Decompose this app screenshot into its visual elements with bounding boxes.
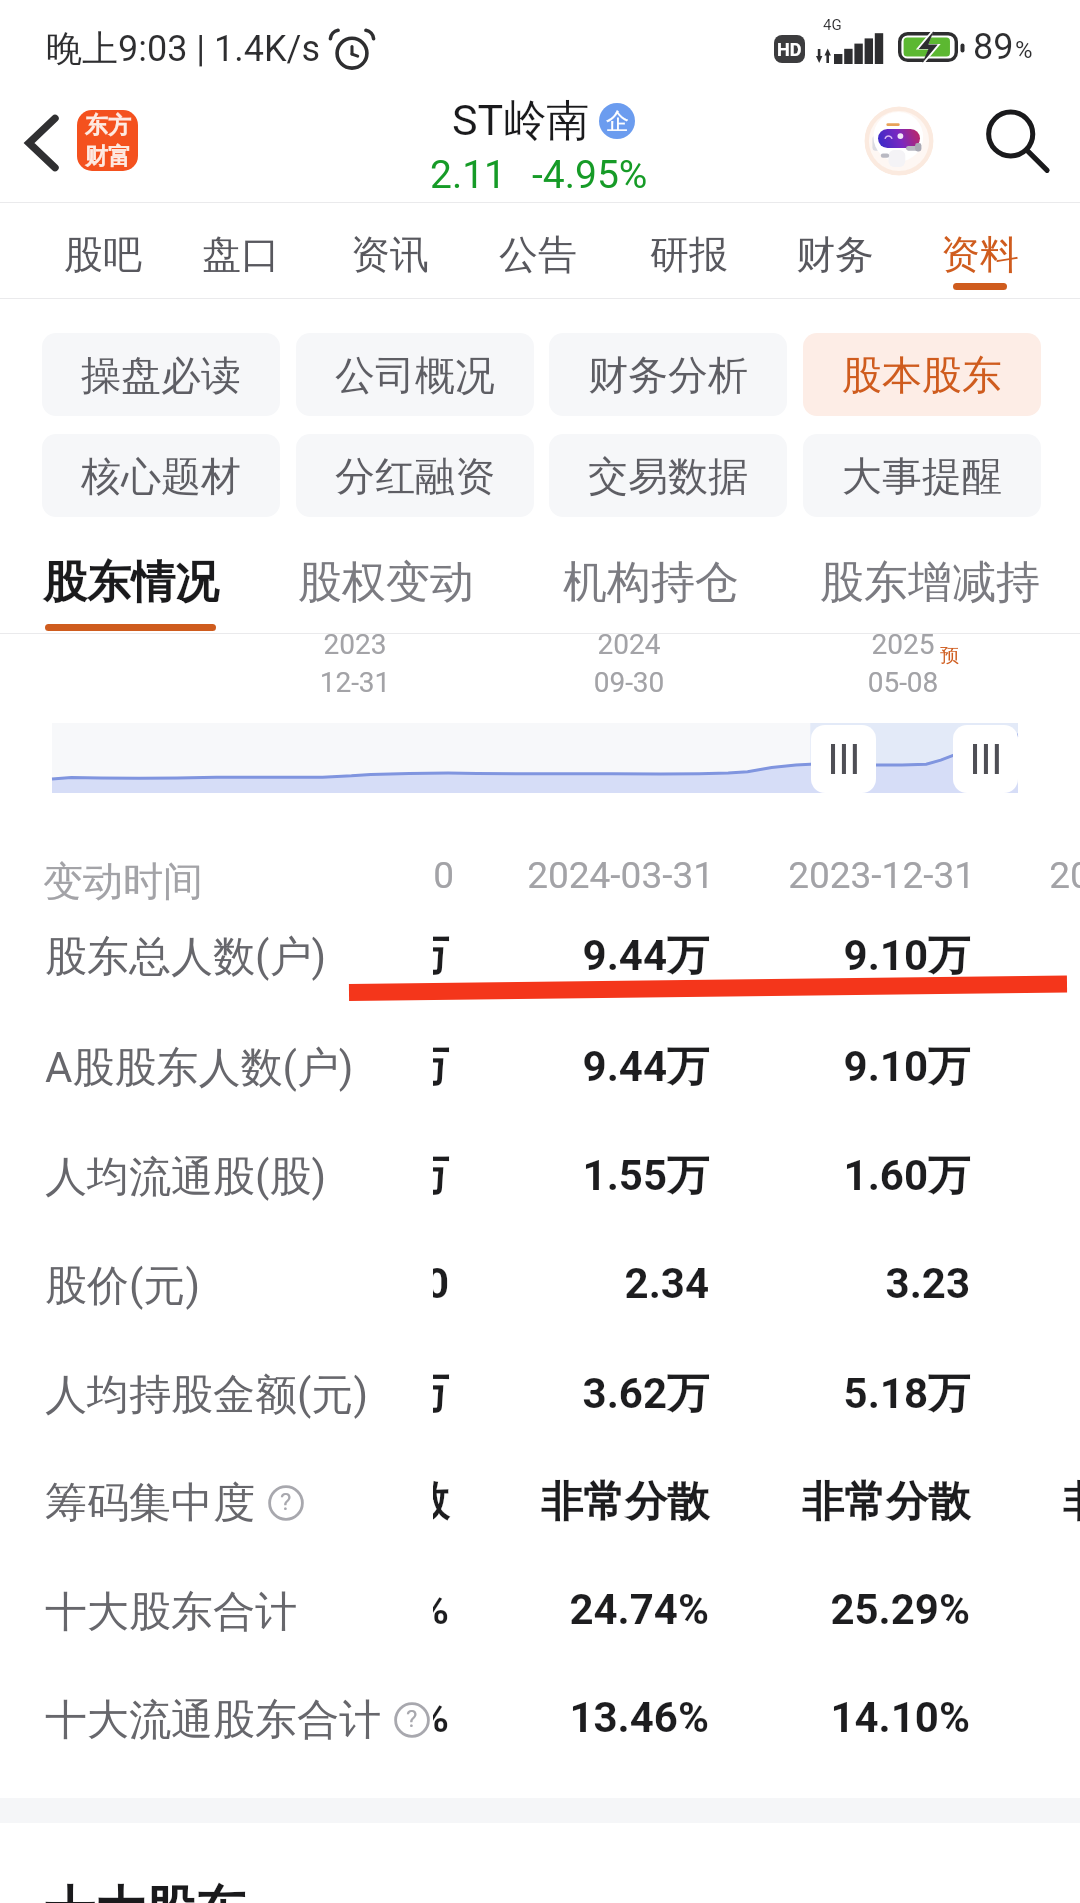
staticText: 25.29%: [740, 1585, 970, 1634]
staticText: 09-30: [549, 666, 709, 699]
button[interactable]: 分红融资: [296, 434, 534, 517]
button[interactable]: 东方财富: [77, 110, 138, 171]
staticText: 4G: [823, 16, 842, 34]
button[interactable]: 交易数据: [549, 434, 787, 517]
staticText: 人均持股金额(元): [45, 1369, 368, 1422]
staticText: 股东总人数(户): [45, 931, 326, 984]
button[interactable]: 筹码集中度: [45, 1476, 304, 1530]
staticText: 交易数据: [588, 451, 748, 501]
staticText: 人均流通股(股): [45, 1151, 326, 1204]
staticText: 股价(元): [45, 1260, 200, 1313]
button[interactable]: Range handle: [811, 725, 876, 793]
button[interactable]: 财务分析: [549, 333, 787, 416]
button[interactable]: 人均流通股(股): [45, 1150, 326, 1204]
staticText: 1.60万: [740, 1150, 970, 1203]
button[interactable]: 股东情况: [33, 533, 209, 623]
button[interactable]: 公告: [465, 203, 611, 298]
staticText: -4.95%: [532, 152, 648, 198]
staticText: 变动时间: [43, 856, 203, 906]
staticText: 9.44万: [479, 1041, 709, 1094]
staticText: 9.50万: [433, 1041, 449, 1094]
button[interactable]: A股股东人数(户): [45, 1041, 354, 1095]
staticText: 资讯: [351, 230, 429, 279]
button[interactable]: 十大股东合计: [45, 1585, 297, 1639]
button[interactable]: 资讯: [317, 203, 463, 298]
staticText: 3.62万: [479, 1368, 709, 1421]
staticText: 分红融资: [335, 451, 495, 501]
staticText: 2024: [549, 628, 709, 661]
button[interactable]: Range handle: [953, 725, 1018, 793]
staticText: 非常分散: [479, 1476, 709, 1529]
button[interactable]: 股权变动: [288, 533, 464, 623]
staticText: 2023: [275, 628, 435, 661]
staticText: 13.46%: [479, 1693, 709, 1742]
button[interactable]: 机构持仓: [553, 533, 729, 623]
button[interactable]: 股本股东: [803, 333, 1041, 416]
staticText: 非常分散: [433, 1476, 449, 1529]
button[interactable]: 核心题材: [42, 434, 280, 517]
button[interactable]: Back: [12, 111, 72, 175]
staticText: 2024-03-31: [484, 854, 714, 897]
button[interactable]: Search: [977, 101, 1057, 181]
button[interactable]: 股东总人数(户): [45, 930, 326, 984]
staticText: 财务分析: [588, 350, 748, 400]
staticText: 1.55万: [479, 1150, 709, 1203]
staticText: 2024-06-30: [433, 854, 454, 897]
staticText: 股东增减持: [820, 555, 1040, 610]
staticText: 核心题材: [81, 451, 241, 501]
staticText: 9.05万: [1001, 930, 1080, 983]
staticText: 23.12%: [433, 1585, 449, 1634]
staticText: ?: [280, 1488, 292, 1516]
staticText: 2.11: [430, 152, 507, 198]
staticText: ?: [406, 1705, 418, 1733]
staticText: 公告: [499, 230, 577, 279]
staticText: 股权变动: [298, 555, 474, 610]
staticText: 研报: [650, 230, 728, 279]
staticText: ST岭南: [452, 94, 590, 148]
staticText: 企: [606, 107, 629, 136]
staticText: 9.44万: [479, 930, 709, 983]
button[interactable]: 股吧: [30, 203, 176, 298]
staticText: 2.34: [479, 1259, 709, 1308]
staticText: %: [1015, 36, 1033, 64]
staticText: 05-08: [823, 666, 983, 699]
button[interactable]: 股价(元): [45, 1259, 200, 1313]
button[interactable]: 大事提醒: [803, 434, 1041, 517]
staticText: 14.10%: [740, 1693, 970, 1742]
staticText: 2.10: [433, 1259, 449, 1308]
button[interactable]: 操盘必读: [42, 333, 280, 416]
staticText: 资料: [941, 230, 1019, 279]
staticText: 1.48万: [433, 1150, 449, 1203]
button[interactable]: 盘口: [168, 203, 314, 298]
staticText: 东方: [85, 111, 131, 140]
button[interactable]: Assistant: [864, 106, 934, 176]
button[interactable]: Help: [268, 1485, 304, 1521]
staticText: 3.11万: [433, 1368, 449, 1421]
button[interactable]: Help: [394, 1702, 430, 1738]
button[interactable]: 财务: [762, 203, 908, 298]
staticText: 盘口: [202, 230, 280, 279]
staticText: 3.23: [740, 1259, 970, 1308]
staticText: 财富: [85, 142, 131, 171]
button[interactable]: 股东增减持: [810, 533, 1030, 623]
staticText: 预: [940, 644, 959, 668]
staticText: HD: [777, 39, 802, 60]
staticText: 股吧: [64, 230, 142, 279]
staticText: 机构持仓: [563, 555, 739, 610]
button[interactable]: 公司概况: [296, 333, 534, 416]
staticText: 9.50万: [433, 930, 449, 983]
staticText: 操盘必读: [81, 350, 241, 400]
button[interactable]: 人均持股金额(元): [45, 1368, 368, 1422]
button[interactable]: 研报: [616, 203, 762, 298]
staticText: 89: [973, 26, 1014, 68]
button[interactable]: 十大流通股东合计: [45, 1693, 430, 1747]
staticText: 十大流通股东合计: [45, 1694, 381, 1747]
staticText: 非常分散: [1001, 1476, 1080, 1529]
button[interactable]: 资料: [907, 203, 1053, 298]
